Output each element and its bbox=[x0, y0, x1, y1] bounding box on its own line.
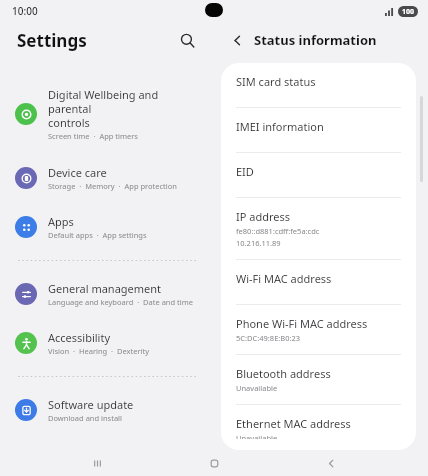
staticText: Accessibility bbox=[48, 330, 111, 345]
staticText: Ethernet MAC address bbox=[236, 416, 351, 431]
staticText: Screen time · App timers bbox=[48, 131, 138, 141]
staticText: Wi-Fi MAC address bbox=[236, 271, 332, 286]
button[interactable]: Recents bbox=[77, 450, 117, 476]
button[interactable]: Home bbox=[194, 450, 234, 476]
button[interactable]: IMEI information bbox=[221, 108, 416, 152]
staticText: Settings bbox=[17, 29, 87, 52]
staticText: Default apps · App settings bbox=[48, 230, 147, 240]
staticText: IMEI information bbox=[236, 119, 324, 134]
button[interactable]: Back bbox=[311, 450, 351, 476]
button[interactable]: Search bbox=[172, 25, 202, 55]
staticText: General management bbox=[48, 281, 162, 296]
staticText: 10.216.11.89 bbox=[236, 238, 281, 248]
button[interactable]: IP address bbox=[221, 198, 416, 259]
button[interactable]: Bluetooth address bbox=[221, 355, 416, 404]
button[interactable]: Software update bbox=[8, 390, 206, 430]
button[interactable]: General management bbox=[8, 274, 206, 314]
button[interactable]: EID bbox=[221, 153, 416, 197]
button[interactable]: Wi-Fi MAC address bbox=[221, 260, 416, 304]
staticText: Language and keyboard · Date and time bbox=[48, 297, 193, 307]
staticText: Vision · Hearing · Dexterity bbox=[48, 346, 150, 356]
staticText: Unavailable bbox=[236, 383, 278, 393]
staticText: EID bbox=[236, 164, 254, 179]
staticText: Apps bbox=[48, 214, 74, 229]
button[interactable]: Digital Wellbeing and parental controls bbox=[8, 80, 206, 148]
staticText: 10:00 bbox=[12, 4, 38, 18]
staticText: SIM card status bbox=[236, 74, 316, 89]
staticText: Status information bbox=[254, 31, 377, 49]
staticText: Digital Wellbeing and parental controls bbox=[48, 87, 198, 130]
staticText: Software update bbox=[48, 397, 134, 412]
button[interactable]: Ethernet MAC address bbox=[221, 405, 416, 450]
button[interactable]: Back bbox=[224, 27, 250, 53]
button[interactable]: Device care bbox=[8, 158, 206, 198]
button[interactable]: SIM card status bbox=[221, 63, 416, 107]
staticText: fe80::d881:cdff:fe5a:cdc bbox=[236, 226, 320, 236]
staticText: Storage · Memory · App protection bbox=[48, 181, 177, 191]
button[interactable]: Apps bbox=[8, 207, 206, 247]
staticText: Device care bbox=[48, 165, 107, 180]
staticText: 5C:DC:49:8E:B0:23 bbox=[236, 333, 301, 343]
staticText: Unavailable bbox=[236, 433, 278, 439]
staticText: Download and install bbox=[48, 413, 122, 423]
button[interactable]: Accessibility bbox=[8, 323, 206, 363]
staticText: Bluetooth address bbox=[236, 366, 331, 381]
staticText: IP address bbox=[236, 209, 291, 224]
button[interactable]: Phone Wi-Fi MAC address bbox=[221, 305, 416, 354]
staticText: 100 bbox=[402, 7, 415, 17]
staticText: Phone Wi-Fi MAC address bbox=[236, 316, 368, 331]
